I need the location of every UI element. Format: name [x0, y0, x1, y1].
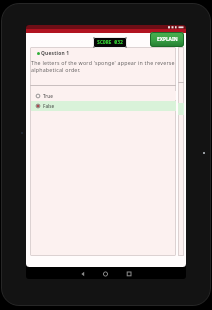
staticText: False [43, 103, 55, 109]
button[interactable]: True [31, 91, 176, 100]
staticText: SCORE 032 [97, 39, 123, 46]
staticText: EXPLAIN [157, 36, 178, 43]
staticText: alphabetical order. [31, 66, 81, 73]
staticText: True [43, 93, 53, 99]
button[interactable]: EXPLAIN [150, 32, 184, 47]
button[interactable]: False [31, 101, 176, 111]
staticText: The letters of the word 'sponge' appear … [31, 59, 175, 66]
staticText: Question 1 [41, 50, 70, 57]
